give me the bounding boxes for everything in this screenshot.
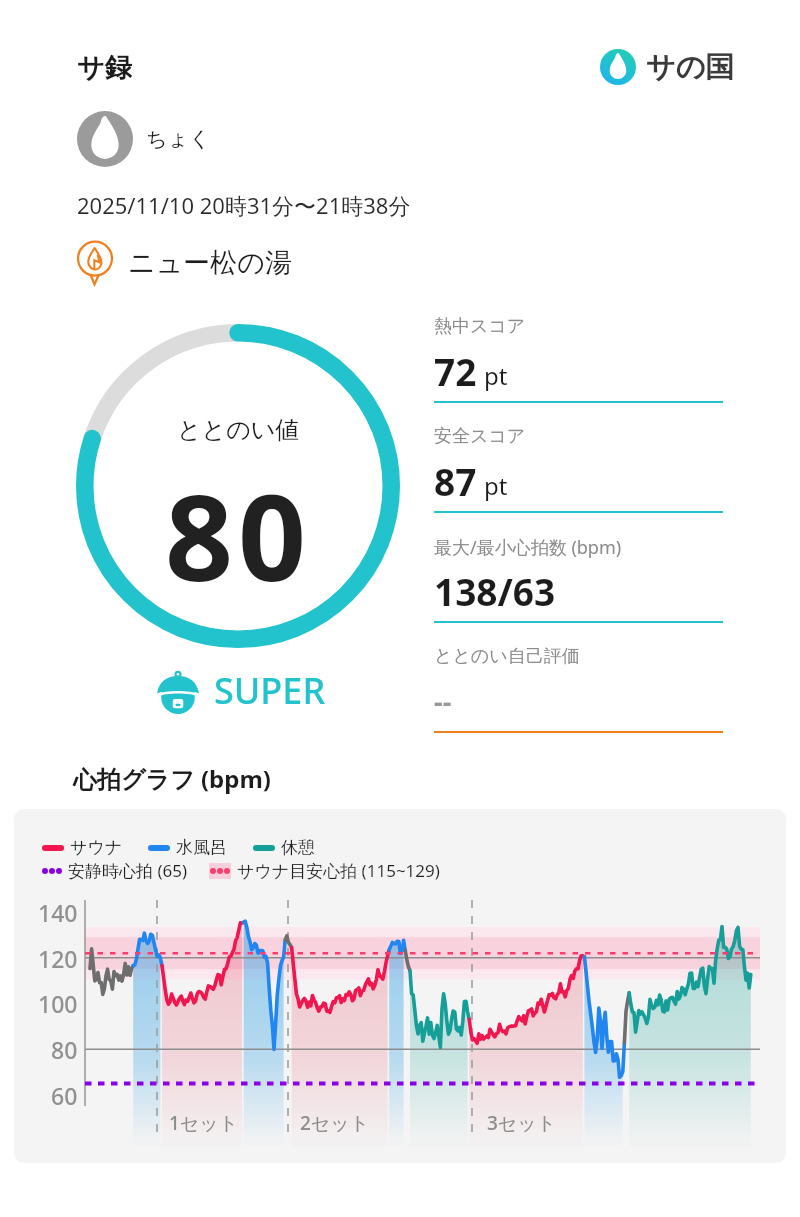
staticText: 138/63 (434, 566, 556, 616)
staticText: サウナ (70, 837, 123, 858)
staticText: -- (434, 683, 452, 720)
button[interactable]: 最大/最小心拍数 (bpm) (434, 535, 723, 645)
button[interactable]: 安全スコア (434, 425, 723, 535)
staticText: 1セット (169, 1110, 239, 1136)
staticText: 120 (38, 943, 78, 974)
button[interactable]: 水風呂 (148, 837, 227, 858)
staticText: 水風呂 (176, 837, 227, 858)
staticText: 安全スコア (434, 425, 526, 448)
button[interactable]: ととのい自己評価 (434, 645, 723, 755)
button[interactable]: 安静時心拍 (65) (42, 859, 188, 882)
staticText: 最大/最小心拍数 (bpm) (434, 535, 622, 560)
staticText: 80 (51, 1034, 78, 1065)
other: サの国 logo (600, 49, 636, 85)
staticText: 2セット (300, 1110, 370, 1136)
staticText: ニュー松の湯 (128, 246, 292, 280)
button[interactable]: ちょく (77, 111, 211, 167)
button[interactable]: Sauna mascot (155, 666, 326, 715)
staticText: 2025/11/10 20時31分〜21時38分 (77, 190, 411, 220)
button[interactable]: サウナ目安心拍 (115~129) (209, 859, 440, 882)
button[interactable]: サウナ (42, 837, 123, 858)
staticText: SUPER (214, 666, 326, 715)
button[interactable]: 熱中スコア (434, 315, 723, 425)
staticText: サ録 (77, 51, 132, 85)
staticText: 心拍グラフ (bpm) (73, 762, 271, 795)
button[interactable]: 休憩 (253, 837, 315, 858)
staticText: pt (484, 359, 508, 392)
staticText: pt (484, 469, 508, 502)
staticText: 140 (38, 897, 78, 928)
other: Sauna mascot (155, 668, 201, 714)
staticText: 80 (165, 454, 312, 616)
staticText: 安静時心拍 (65) (68, 859, 188, 882)
staticText: 100 (38, 988, 78, 1019)
staticText: サの国 (646, 49, 735, 86)
staticText: ちょく (146, 126, 211, 152)
staticText: サウナ目安心拍 (115~129) (237, 859, 440, 882)
staticText: ととのい自己評価 (434, 645, 580, 668)
staticText: 87 (434, 456, 477, 506)
staticText: 休憩 (281, 837, 315, 858)
staticText: 60 (51, 1080, 78, 1111)
staticText: 72 (434, 346, 477, 396)
button[interactable]: ニュー松の湯 (73, 241, 292, 285)
button[interactable]: サの国 logo (600, 49, 735, 86)
staticText: ととのい値 (177, 415, 300, 445)
staticText: 熱中スコア (434, 315, 526, 338)
staticText: 3セット (487, 1110, 557, 1136)
